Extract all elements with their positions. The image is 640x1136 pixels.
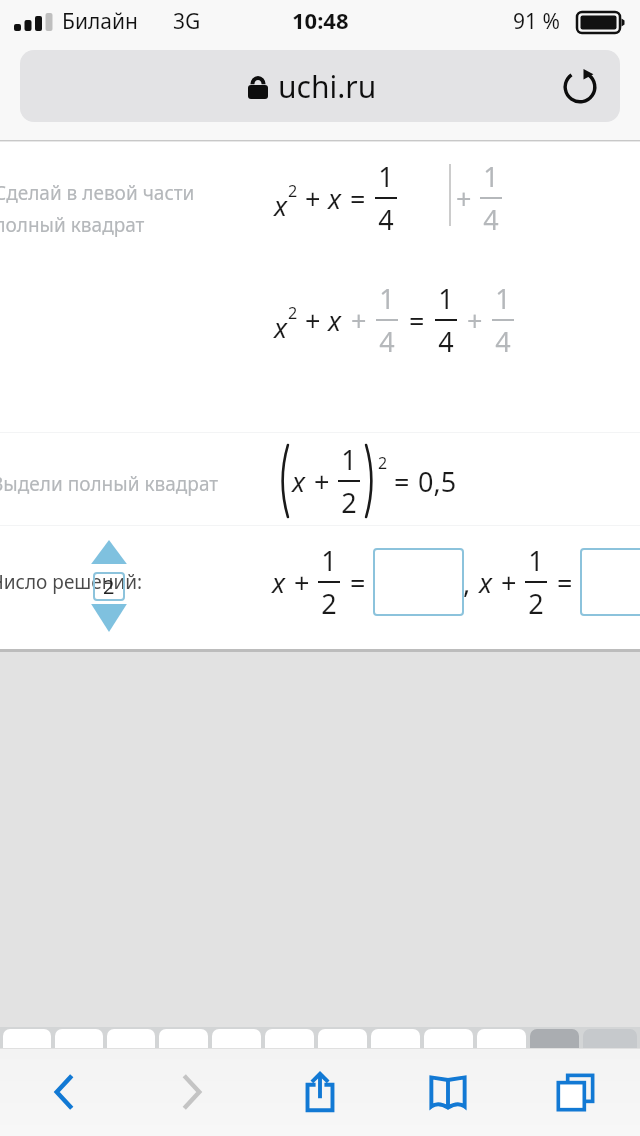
button[interactable] xyxy=(107,1029,155,1050)
button[interactable]: 5 xyxy=(477,1029,526,1050)
staticText: 4 xyxy=(440,1042,457,1050)
button[interactable]: Back xyxy=(0,1048,128,1136)
button[interactable]: Answer input xyxy=(374,549,463,615)
staticText: + xyxy=(501,564,517,601)
button[interactable]: 1 xyxy=(265,1029,314,1050)
staticText: x xyxy=(479,564,493,601)
staticText: 3G xyxy=(173,7,201,36)
staticText: 4 xyxy=(483,201,499,238)
staticText: , xyxy=(463,564,471,601)
staticText: 1 xyxy=(438,280,454,317)
button[interactable]: Reload xyxy=(552,58,608,114)
staticText: = xyxy=(409,302,425,339)
button[interactable]: uchi.ru xyxy=(20,50,620,122)
staticText: 0,5 xyxy=(418,463,457,500)
staticText: + xyxy=(305,180,321,217)
staticText: 4 xyxy=(495,323,511,360)
staticText: uchi.ru xyxy=(278,66,377,107)
staticText: 2 xyxy=(288,180,298,202)
staticText: 2 xyxy=(528,585,544,622)
button[interactable]: OK xyxy=(583,1029,637,1050)
staticText: 4 xyxy=(438,323,454,360)
button[interactable]: Answer input xyxy=(581,549,640,615)
staticText: 2 xyxy=(103,573,115,600)
button[interactable]: 4 xyxy=(424,1029,473,1050)
staticText: x xyxy=(272,564,286,601)
button[interactable]: 3 xyxy=(371,1029,420,1050)
staticText: 3 xyxy=(387,1042,404,1050)
staticText: 2 xyxy=(341,484,357,521)
staticText: 1 xyxy=(495,280,511,317)
staticText: 10:48 xyxy=(292,5,349,35)
staticText: 2 xyxy=(378,452,388,474)
staticText: x xyxy=(328,180,342,217)
button[interactable]: 2 xyxy=(318,1029,367,1050)
staticText: + xyxy=(314,463,330,500)
button[interactable] xyxy=(212,1029,261,1050)
staticText: x xyxy=(292,463,306,500)
staticText: 1 xyxy=(281,1042,298,1050)
staticText: 91 % xyxy=(513,7,560,36)
staticText: x xyxy=(328,302,342,339)
staticText: = xyxy=(350,180,366,217)
staticText: 1 xyxy=(341,441,357,478)
button[interactable] xyxy=(159,1029,208,1050)
staticText: 4 xyxy=(379,323,395,360)
button[interactable] xyxy=(530,1029,579,1050)
staticText: = xyxy=(394,463,410,500)
button[interactable]: Number of solutions stepper xyxy=(88,538,130,634)
staticText: 4 xyxy=(378,201,394,238)
staticText: 5 xyxy=(493,1042,510,1050)
button[interactable]: Share xyxy=(256,1048,384,1136)
staticText: 1 xyxy=(379,280,395,317)
staticText: 2 xyxy=(334,1042,351,1050)
staticText: x xyxy=(274,309,288,346)
staticText: Билайн xyxy=(62,7,138,36)
staticText: + xyxy=(351,302,367,339)
staticText: + xyxy=(467,302,483,339)
staticText: + xyxy=(305,302,321,339)
staticText: = xyxy=(557,564,573,601)
staticText: 1 xyxy=(378,158,394,195)
staticText: Число решений: xyxy=(0,569,143,595)
staticText: + xyxy=(456,180,472,217)
button[interactable] xyxy=(55,1029,103,1050)
staticText: + xyxy=(294,564,310,601)
staticText: OK xyxy=(593,1042,627,1050)
button[interactable]: Tabs xyxy=(512,1048,640,1136)
button[interactable] xyxy=(3,1029,51,1050)
staticText: полный квадрат xyxy=(0,212,145,238)
staticText: x xyxy=(274,187,288,224)
staticText: Сделай в левой части xyxy=(0,180,195,206)
staticText: 1 xyxy=(321,542,337,579)
staticText: 1 xyxy=(483,158,499,195)
staticText: 2 xyxy=(321,585,337,622)
staticText: Выдели полный квадрат xyxy=(0,471,219,497)
staticText: = xyxy=(350,564,366,601)
staticText: 1 xyxy=(528,542,544,579)
staticText: 2 xyxy=(288,302,298,324)
button[interactable]: Forward xyxy=(128,1048,256,1136)
button[interactable]: Bookmarks xyxy=(384,1048,512,1136)
